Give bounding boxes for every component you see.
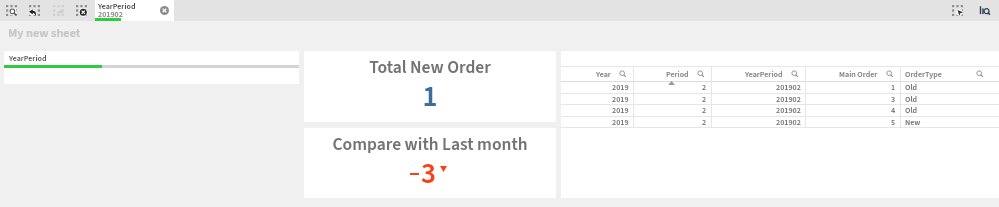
button[interactable]: Selections tool [945, 0, 970, 21]
staticText: New [905, 117, 921, 128]
staticText: 201902 [776, 94, 801, 105]
button[interactable]: YearPeriod [712, 67, 806, 81]
staticText: 201902 [98, 9, 123, 20]
button[interactable]: Step back [23, 0, 45, 21]
staticText: 2019 [612, 94, 629, 105]
button[interactable]: Total New Order [304, 51, 556, 122]
staticText: YearPeriod [9, 53, 47, 64]
staticText: 201902 [776, 105, 801, 116]
staticText: Total New Order [304, 55, 556, 80]
staticText: Year [596, 69, 611, 80]
button[interactable]: Period [634, 67, 712, 81]
staticText: OrderType [905, 69, 942, 80]
button[interactable]: Year [561, 67, 634, 81]
staticText: My new sheet [8, 24, 81, 42]
button[interactable]: Search selections [0, 0, 22, 21]
staticText: 3 [421, 153, 436, 194]
button[interactable]: Clear all selections [70, 0, 92, 21]
staticText: 2019 [612, 117, 629, 128]
button[interactable]: 2019 [561, 93, 999, 105]
staticText: 201902 [776, 117, 801, 128]
staticText: 2019 [612, 105, 629, 116]
staticText: 2019 [612, 82, 629, 93]
staticText: 2 [702, 94, 707, 105]
button[interactable]: Clear selection [156, 0, 173, 21]
staticText: 2 [702, 105, 707, 116]
staticText: YearPeriod [745, 69, 783, 80]
button[interactable]: 2019 [561, 104, 999, 116]
staticText: Main Order [839, 69, 878, 80]
staticText: 2 [702, 82, 707, 93]
button[interactable]: 2019 [561, 81, 999, 93]
button[interactable]: OrderType [901, 67, 991, 81]
button[interactable]: YearPeriod [4, 51, 299, 84]
staticText: 4 [891, 105, 896, 116]
staticText: 5 [891, 117, 896, 128]
staticText: 1 [891, 82, 896, 93]
button[interactable]: Main Order [806, 67, 901, 81]
button[interactable]: YearPeriod [95, 0, 174, 21]
button[interactable]: Step forward [47, 0, 69, 21]
button[interactable]: Insight Advisor [971, 0, 999, 21]
staticText: Old [905, 105, 918, 116]
button[interactable]: 2019 [561, 116, 999, 128]
staticText: Old [905, 94, 918, 105]
button[interactable]: Compare with Last month [304, 128, 556, 198]
staticText: 3 [891, 94, 896, 105]
staticText: 2 [702, 117, 707, 128]
staticText: Period [666, 69, 689, 80]
staticText: Old [905, 82, 918, 93]
staticText: Compare with Last month [304, 132, 556, 157]
staticText: 1 [304, 76, 556, 117]
staticText: YearPeriod [98, 1, 136, 12]
staticText: 201902 [776, 82, 801, 93]
